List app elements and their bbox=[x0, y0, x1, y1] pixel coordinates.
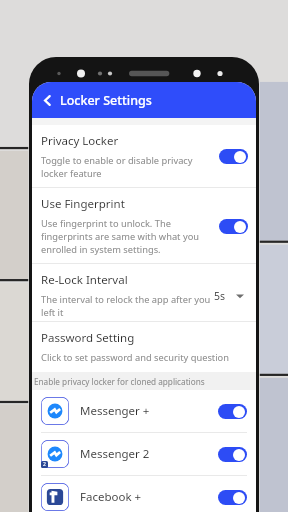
button[interactable]: Use Fingerprint bbox=[32, 188, 256, 263]
staticText: Password Setting bbox=[41, 330, 135, 346]
button[interactable]: Privacy Locker bbox=[32, 125, 256, 187]
staticText: Enable privacy locker for cloned applica… bbox=[34, 376, 205, 387]
button[interactable]: Toggle switch bbox=[218, 404, 247, 419]
button[interactable]: Facebook + bbox=[32, 476, 256, 512]
button[interactable]: 2 bbox=[32, 433, 256, 475]
button[interactable]: Back bbox=[32, 82, 256, 118]
button[interactable]: Messenger + bbox=[32, 390, 256, 432]
button[interactable]: Password Setting bbox=[32, 322, 256, 372]
staticText: 5s bbox=[214, 289, 226, 303]
button[interactable]: Toggle switch bbox=[218, 447, 247, 462]
button[interactable]: Toggle switch bbox=[218, 490, 247, 505]
button[interactable]: Expand bbox=[235, 291, 245, 301]
staticText: Messenger 2 bbox=[80, 446, 218, 462]
staticText: Toggle to enable or disable privacy lock… bbox=[41, 154, 213, 180]
staticText: The interval to relock the app after you… bbox=[41, 293, 214, 319]
staticText: 2 bbox=[43, 461, 46, 468]
staticText: Re-Lock Interval bbox=[41, 272, 128, 288]
staticText: Click to set password and security quest… bbox=[41, 351, 229, 364]
button[interactable]: Back bbox=[36, 89, 58, 111]
staticText: Use Fingerprint bbox=[41, 196, 125, 212]
staticText: Use fingerprint to unlock. The fingerpri… bbox=[41, 217, 213, 256]
staticText: Messenger + bbox=[80, 403, 218, 419]
button[interactable]: Re-Lock Interval bbox=[32, 264, 256, 321]
button[interactable]: Toggle switch bbox=[219, 219, 248, 234]
button[interactable]: Toggle switch bbox=[219, 149, 248, 164]
staticText: Privacy Locker bbox=[41, 133, 119, 149]
staticText: Locker Settings bbox=[60, 92, 152, 109]
staticText: Facebook + bbox=[80, 489, 218, 505]
